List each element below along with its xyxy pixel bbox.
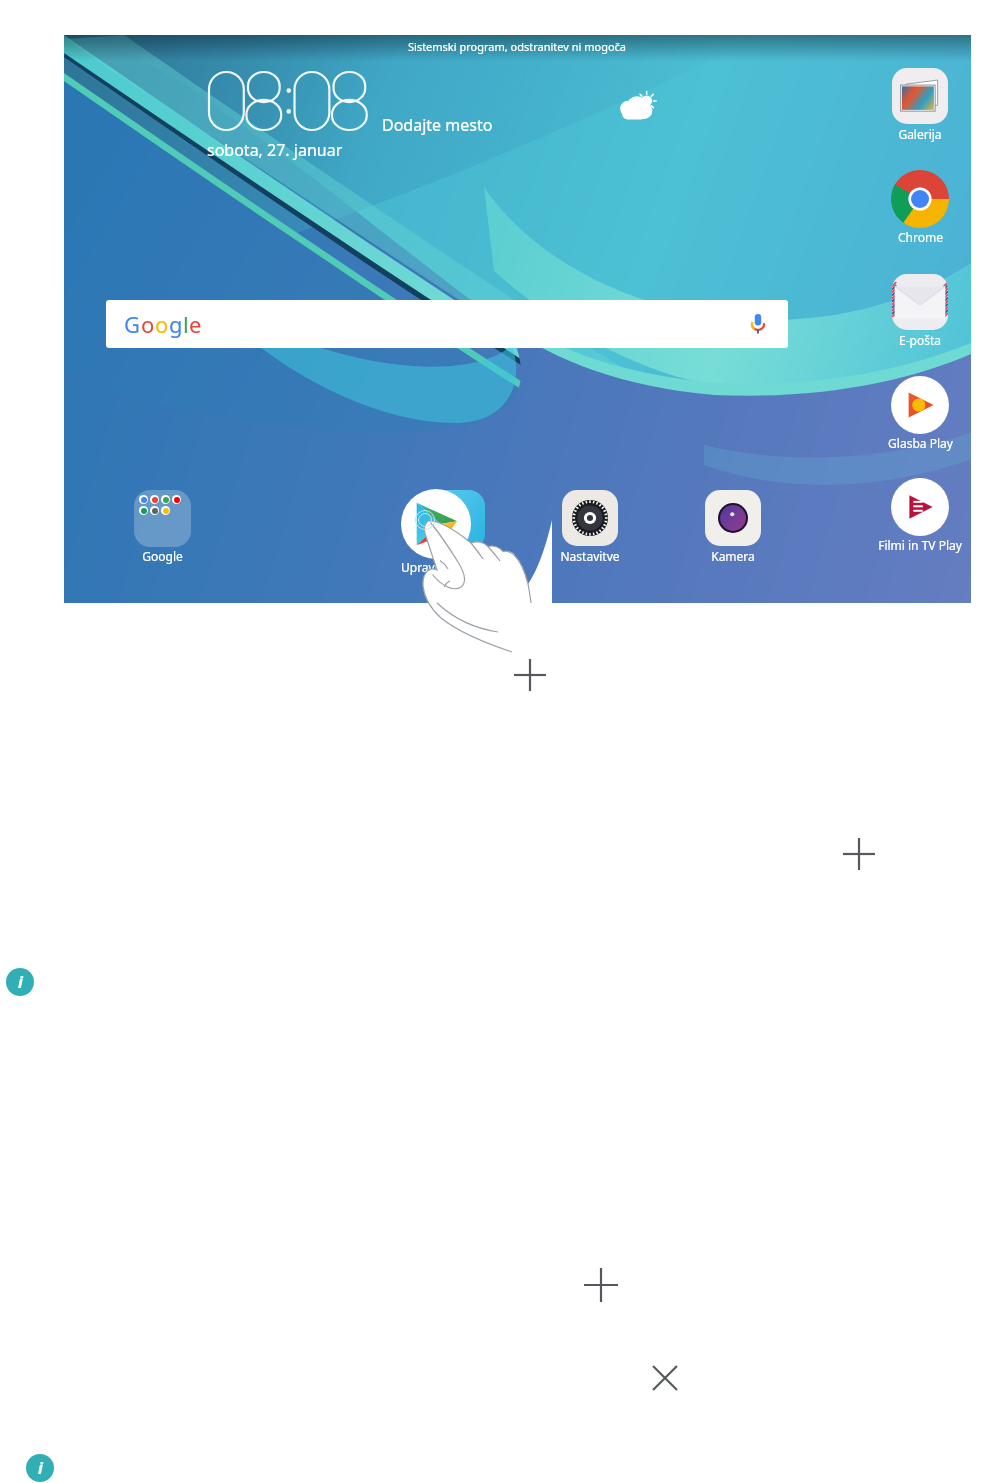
staticText: E-pošta — [899, 332, 941, 348]
button[interactable]: Information — [6, 968, 34, 996]
staticText: Glasba Play — [888, 435, 953, 451]
staticText: Google — [142, 548, 183, 564]
staticText: Upravitelj — [401, 559, 456, 575]
staticText: l — [183, 309, 189, 339]
button[interactable]: Chrome — [870, 170, 970, 245]
staticText: Galerija — [898, 126, 942, 142]
staticText: Filmi in TV Play — [878, 537, 962, 553]
staticText: Nastavitve — [560, 548, 620, 564]
staticText: Chrome — [898, 229, 943, 245]
staticText: Dodajte mesto — [382, 114, 493, 136]
staticText: o — [155, 309, 169, 339]
button[interactable]: Information — [26, 1454, 54, 1482]
button[interactable]: Google — [112, 489, 212, 564]
button[interactable]: G — [106, 300, 788, 348]
button[interactable]: Glasba Play — [870, 376, 970, 451]
staticText: Kamera — [711, 548, 755, 564]
button[interactable]: Nastavitve — [540, 489, 640, 564]
staticText: sobota, 27. januar — [207, 139, 343, 161]
button[interactable]: Galerija — [870, 67, 970, 142]
button[interactable]: Upravitelj — [401, 489, 531, 584]
staticText: e — [189, 309, 202, 339]
staticText: g — [169, 309, 183, 339]
staticText: G — [124, 309, 141, 339]
staticText: o — [141, 309, 155, 339]
staticText: i — [18, 971, 23, 993]
staticText: i — [38, 1457, 43, 1479]
staticText: Sistemski program, odstranitev ni mogoča — [408, 39, 627, 54]
button[interactable]: Kamera — [683, 489, 783, 564]
button[interactable]: Filmi in TV Play — [870, 478, 970, 553]
button[interactable]: E-pošta — [870, 273, 970, 348]
